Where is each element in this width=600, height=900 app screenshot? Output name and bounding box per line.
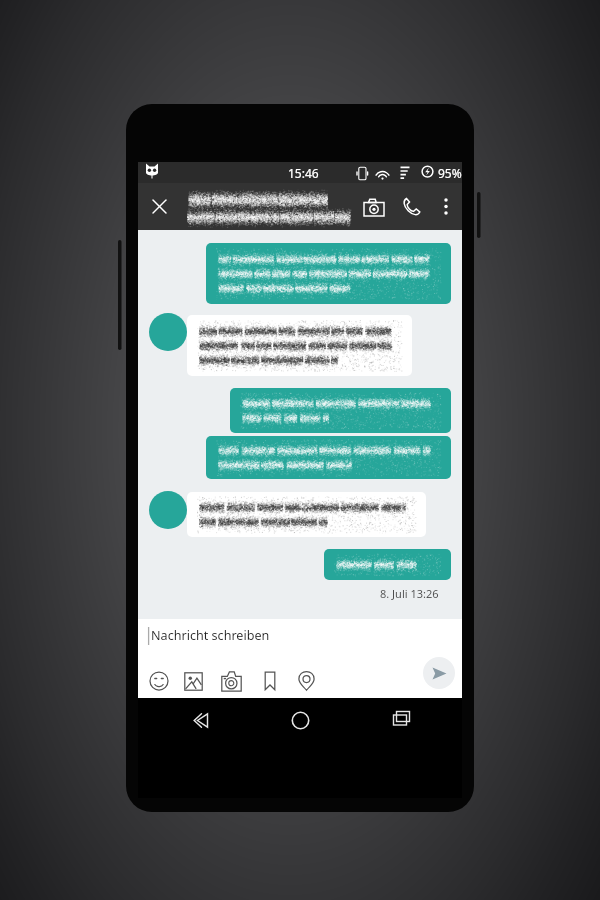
button[interactable]: Close (139, 186, 179, 226)
staticText: 15:46 (288, 165, 319, 181)
button[interactable] (206, 243, 451, 304)
button[interactable]: Bookmark (253, 664, 287, 698)
button[interactable] (206, 436, 451, 479)
button[interactable] (230, 388, 451, 433)
button[interactable]: Recent apps (380, 698, 424, 742)
button[interactable]: Call (392, 187, 432, 227)
button[interactable]: Image (176, 664, 210, 698)
button[interactable]: Home (278, 698, 322, 742)
button[interactable]: Location (289, 664, 323, 698)
staticText: 8. Juli 13:26 (380, 586, 439, 601)
button[interactable]: Contact avatar (149, 491, 187, 529)
button[interactable]: Camera (214, 664, 248, 698)
button[interactable] (324, 549, 451, 580)
button[interactable] (187, 492, 426, 537)
staticText: 95% (438, 165, 462, 181)
staticText: Nachricht schreiben (151, 627, 270, 644)
button[interactable]: Back (179, 698, 223, 742)
button[interactable]: More options (429, 189, 463, 223)
button[interactable]: Emoji (142, 664, 176, 698)
button[interactable]: Send (423, 657, 455, 689)
button[interactable]: Camera (354, 187, 394, 227)
button[interactable] (187, 315, 412, 376)
button[interactable]: Contact avatar (149, 313, 187, 351)
